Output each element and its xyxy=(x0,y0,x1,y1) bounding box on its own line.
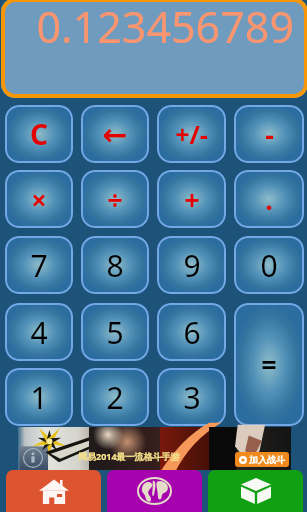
staticText: 0 xyxy=(260,245,278,286)
staticText: ← xyxy=(102,117,128,152)
staticText: + xyxy=(184,181,200,218)
button[interactable]: Browser xyxy=(107,470,202,512)
staticText: . xyxy=(265,181,273,218)
button[interactable]: +/- xyxy=(157,105,226,163)
staticText: 0.123456789 xyxy=(1,0,294,56)
staticText: 8 xyxy=(106,245,124,286)
staticText: × xyxy=(31,181,47,218)
staticText: 7 xyxy=(30,245,48,286)
button[interactable]: ← xyxy=(81,105,149,163)
button[interactable]: + xyxy=(157,170,226,228)
button[interactable]: 加入战斗 xyxy=(239,454,285,465)
button[interactable]: Apps xyxy=(208,470,303,512)
staticText: ÷ xyxy=(107,181,123,218)
button[interactable]: = xyxy=(234,303,304,426)
button[interactable]: 3 xyxy=(157,368,226,426)
button[interactable]: 8 xyxy=(81,236,149,294)
button[interactable]: Home xyxy=(6,470,101,512)
staticText: = xyxy=(261,346,277,383)
button[interactable]: ÷ xyxy=(81,170,149,228)
staticText: 3 xyxy=(183,377,201,418)
button[interactable]: 5 xyxy=(81,303,149,361)
staticText: 1 xyxy=(30,377,48,418)
button[interactable]: 4 xyxy=(5,303,73,361)
button[interactable]: 网易2014最一流格斗手游 xyxy=(18,427,291,470)
staticText: - xyxy=(265,116,274,153)
button[interactable]: 2 xyxy=(81,368,149,426)
button[interactable]: 0 xyxy=(234,236,304,294)
button[interactable]: × xyxy=(5,170,73,228)
button[interactable]: 1 xyxy=(5,368,73,426)
button[interactable]: C xyxy=(5,105,73,163)
staticText: 4 xyxy=(30,312,48,353)
staticText: 加入战斗 xyxy=(249,454,285,465)
staticText: 9 xyxy=(183,245,201,286)
staticText: 2 xyxy=(106,377,124,418)
button[interactable]: 6 xyxy=(157,303,226,361)
button[interactable]: - xyxy=(234,105,304,163)
button[interactable]: . xyxy=(234,170,304,228)
staticText: +/- xyxy=(175,117,208,151)
staticText: 6 xyxy=(183,312,201,353)
button[interactable]: 7 xyxy=(5,236,73,294)
button[interactable]: 9 xyxy=(157,236,226,294)
staticText: 网易2014最一流格斗手游 xyxy=(78,450,180,462)
staticText: 5 xyxy=(106,312,124,353)
staticText: C xyxy=(30,115,48,153)
